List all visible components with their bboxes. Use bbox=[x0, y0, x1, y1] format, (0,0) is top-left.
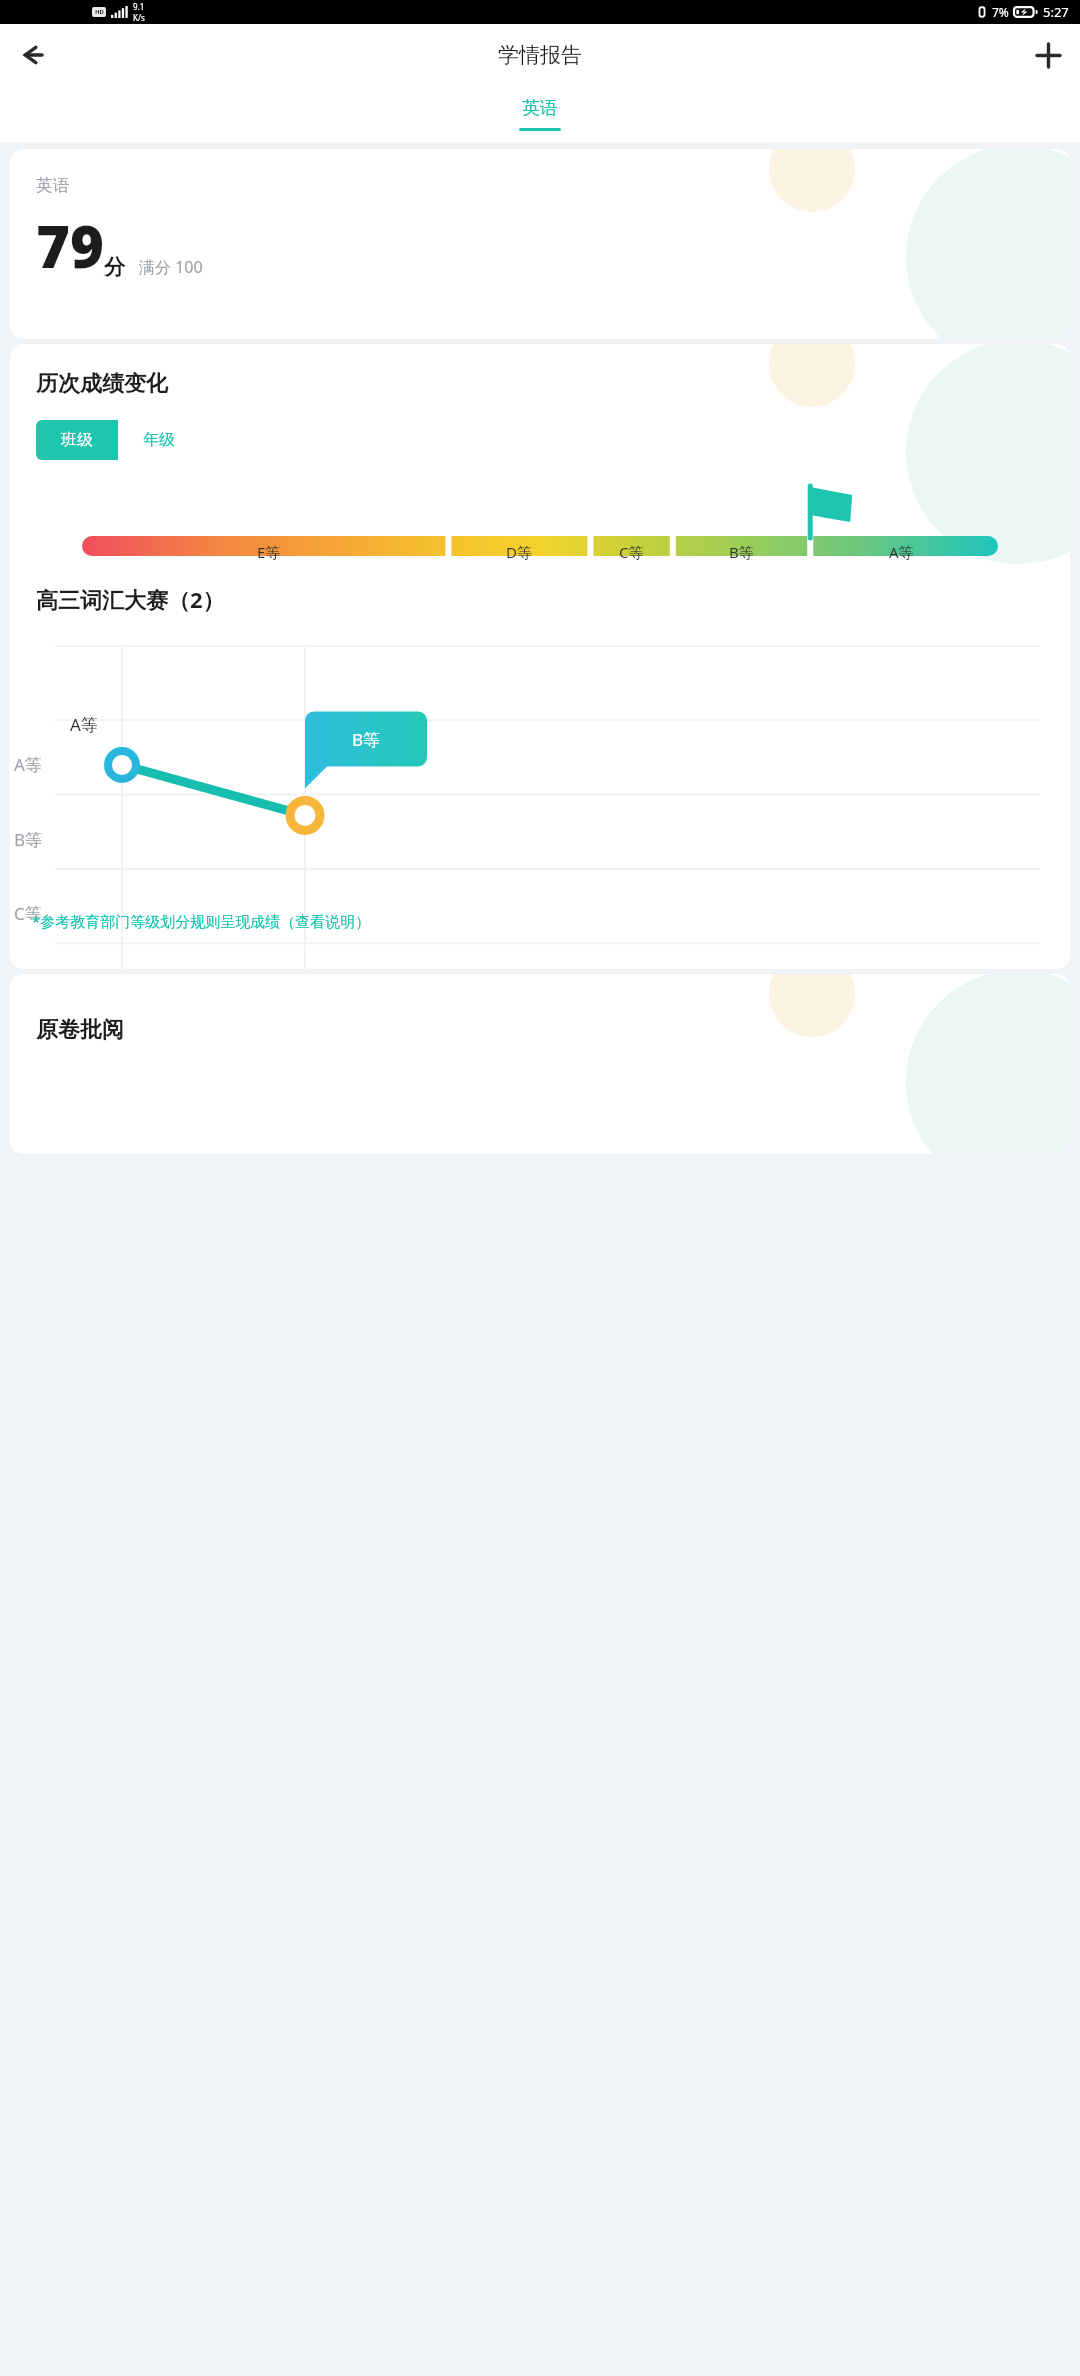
staticText: 英语 bbox=[36, 175, 70, 196]
staticText: B等 bbox=[14, 828, 43, 851]
staticText: C等 bbox=[619, 542, 644, 562]
staticText: 英语 bbox=[522, 97, 558, 120]
staticText: 原卷批阅 bbox=[36, 1016, 124, 1044]
staticText: A等 bbox=[889, 542, 914, 562]
staticText: 班级 bbox=[61, 430, 93, 450]
staticText: 历次成绩变化 bbox=[36, 370, 168, 398]
staticText: 9.1 bbox=[133, 1, 145, 12]
staticText: 高三词汇大赛（2） bbox=[36, 584, 225, 614]
staticText: D等 bbox=[506, 542, 532, 562]
staticText: 7% bbox=[992, 4, 1009, 20]
staticText: A等 bbox=[14, 753, 42, 776]
button[interactable]: 英语 bbox=[519, 97, 561, 131]
button[interactable]: 班级 bbox=[36, 420, 118, 460]
button[interactable]: Add bbox=[1024, 31, 1072, 79]
button[interactable]: 年级 bbox=[118, 420, 200, 460]
staticText: 5:27 bbox=[1043, 3, 1069, 21]
staticText: E等 bbox=[257, 542, 281, 562]
button[interactable]: *参考教育部门等级划分规则呈现成绩（查看说明） bbox=[32, 911, 371, 931]
staticText: 79 bbox=[36, 206, 104, 285]
staticText: A等 bbox=[70, 713, 98, 736]
staticText: B等 bbox=[352, 728, 381, 751]
staticText: K/s bbox=[133, 12, 145, 23]
staticText: HD bbox=[95, 8, 104, 16]
staticText: 满分 100 bbox=[139, 256, 203, 278]
button[interactable]: Back bbox=[8, 31, 56, 79]
staticText: B等 bbox=[729, 542, 754, 562]
button[interactable]: 原卷批阅 bbox=[10, 974, 1070, 1154]
staticText: 学情报告 bbox=[498, 42, 582, 68]
staticText: 分 bbox=[104, 254, 125, 280]
staticText: 年级 bbox=[143, 430, 175, 450]
staticText: C等 bbox=[14, 902, 42, 925]
button[interactable]: 英语 bbox=[10, 149, 1070, 339]
